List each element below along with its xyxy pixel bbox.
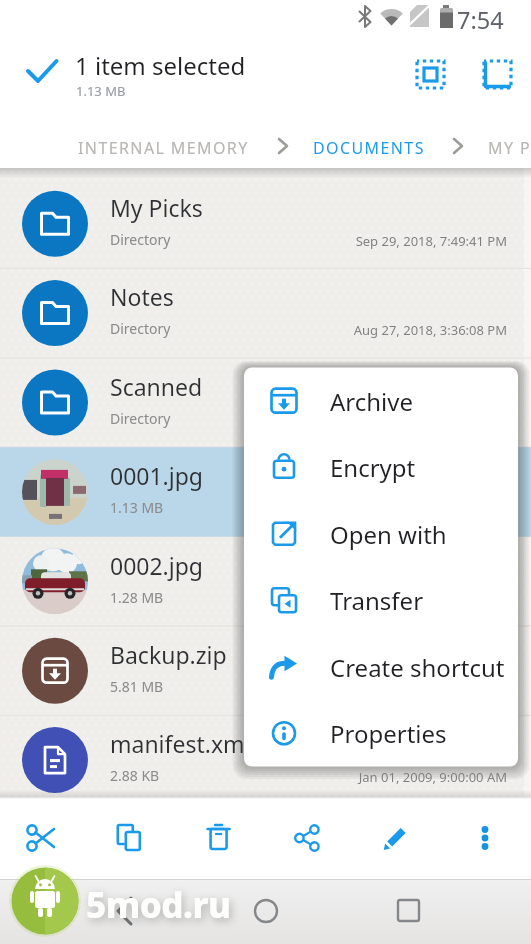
staticText: 0001.jpg (110, 460, 204, 491)
staticText: Notes (110, 281, 174, 312)
staticText: Create shortcut (330, 651, 505, 684)
staticText: Aug 27, 2018, 3:36:08 PM (200, 321, 507, 339)
button[interactable] (16, 810, 72, 866)
button[interactable] (105, 810, 161, 866)
staticText: 7:54 (457, 4, 504, 36)
staticText: My Picks (110, 192, 203, 223)
button[interactable] (306, 128, 438, 164)
staticText: Directory (110, 409, 171, 428)
staticText: Scanned (110, 371, 203, 402)
staticText: Directory (110, 230, 171, 249)
staticText: Encrypt (330, 451, 416, 484)
button[interactable] (244, 634, 518, 701)
staticText: 5.81 MB (110, 677, 164, 696)
button[interactable] (244, 567, 518, 634)
staticText: DOCUMENTS (313, 137, 425, 159)
button[interactable] (410, 54, 454, 98)
button[interactable] (96, 885, 236, 937)
button[interactable] (244, 700, 518, 767)
staticText: 1.13 MB (110, 498, 164, 517)
staticText: manifest.xml (110, 728, 243, 759)
staticText: Open with (330, 518, 447, 551)
staticText: 5mod.ru (86, 881, 231, 929)
button[interactable] (0, 626, 531, 715)
button[interactable] (370, 810, 426, 866)
staticText: Backup.zip (110, 639, 227, 670)
button[interactable] (459, 810, 515, 866)
staticText: 0002.jpg (110, 550, 204, 581)
button[interactable] (477, 54, 521, 98)
button[interactable] (193, 810, 249, 866)
button[interactable] (244, 368, 518, 435)
button[interactable] (0, 358, 531, 447)
button[interactable] (0, 268, 531, 357)
staticText: Transfer (330, 584, 424, 617)
button[interactable] (282, 810, 338, 866)
button[interactable] (0, 537, 531, 626)
staticText: 1.28 MB (110, 588, 164, 607)
staticText: 1.13 MB (76, 82, 126, 100)
button[interactable] (238, 885, 294, 937)
button[interactable] (0, 715, 531, 804)
button[interactable] (380, 885, 436, 937)
staticText: 1 item selected (75, 49, 246, 82)
button[interactable] (0, 179, 531, 268)
staticText: Sep 29, 2018, 7:49:41 PM (200, 232, 507, 250)
staticText: Jan 01, 2009, 9:00:00 AM (200, 768, 507, 786)
staticText: INTERNAL MEMORY (78, 137, 249, 159)
button[interactable] (0, 447, 531, 536)
staticText: Properties (330, 717, 447, 750)
staticText: MY P (488, 137, 531, 159)
button[interactable] (244, 434, 518, 501)
staticText: Archive (330, 385, 414, 418)
staticText: Directory (110, 319, 171, 338)
button[interactable] (244, 501, 518, 568)
button[interactable] (70, 128, 265, 164)
staticText: 2.88 KB (110, 766, 160, 785)
